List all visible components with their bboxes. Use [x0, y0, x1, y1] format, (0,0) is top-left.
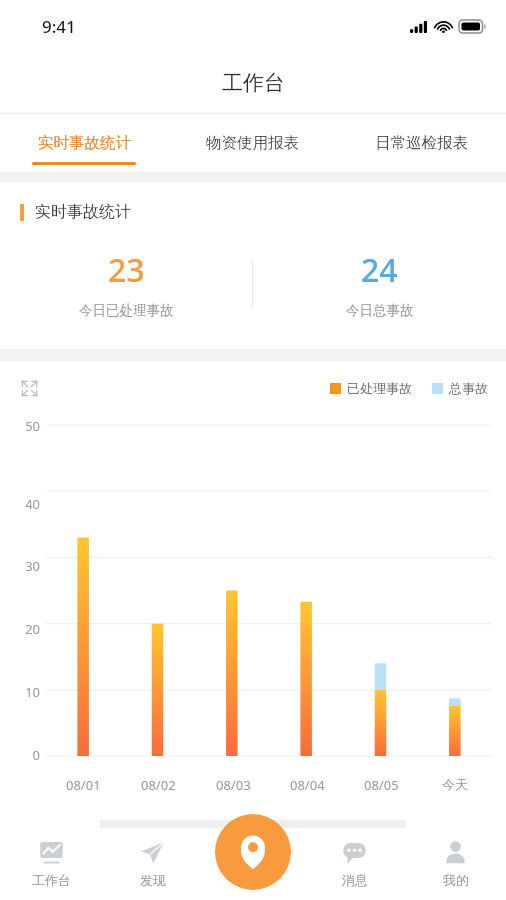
staticText: 物资使用报表 — [206, 133, 299, 153]
button[interactable]: Fullscreen — [14, 373, 44, 403]
staticText: 工作台 — [32, 872, 71, 888]
button[interactable]: 实时事故统计 — [0, 114, 168, 172]
staticText: 08/05 — [364, 776, 399, 794]
staticText: 日常巡检报表 — [375, 133, 468, 153]
staticText: 今日已处理事故 — [79, 302, 174, 319]
staticText: 实时事故统计 — [38, 133, 131, 153]
staticText: 08/01 — [66, 776, 101, 794]
staticText: 08/03 — [216, 776, 251, 794]
staticText: 发现 — [140, 872, 166, 888]
staticText: 40 — [25, 495, 40, 513]
staticText: 9:41 — [42, 15, 76, 38]
staticText: 今天 — [442, 776, 468, 792]
button[interactable]: 我的 — [405, 828, 506, 900]
staticText: 实时事故统计 — [35, 202, 131, 222]
staticText: 我的 — [443, 872, 469, 888]
staticText: 50 — [0, 417, 40, 435]
staticText: 24 — [361, 248, 398, 292]
staticText: 总事故 — [449, 380, 488, 396]
button[interactable]: 消息 — [304, 828, 405, 900]
staticText: 23 — [108, 248, 145, 292]
button[interactable]: 日常巡检报表 — [337, 114, 506, 172]
staticText: 已处理事故 — [347, 380, 412, 396]
staticText: 今日总事故 — [346, 302, 414, 319]
staticText: 工作台 — [222, 70, 285, 96]
staticText: 08/04 — [290, 776, 325, 794]
staticText: 消息 — [342, 872, 368, 888]
staticText: 0 — [32, 746, 40, 764]
staticText: 20 — [25, 620, 40, 638]
button[interactable]: 工作台 — [0, 828, 102, 900]
button[interactable]: 物资使用报表 — [168, 114, 337, 172]
staticText: 10 — [25, 683, 40, 701]
staticText: 08/02 — [141, 776, 176, 794]
button[interactable]: Location — [215, 814, 291, 890]
button[interactable]: 发现 — [102, 828, 203, 900]
staticText: 30 — [25, 557, 40, 575]
